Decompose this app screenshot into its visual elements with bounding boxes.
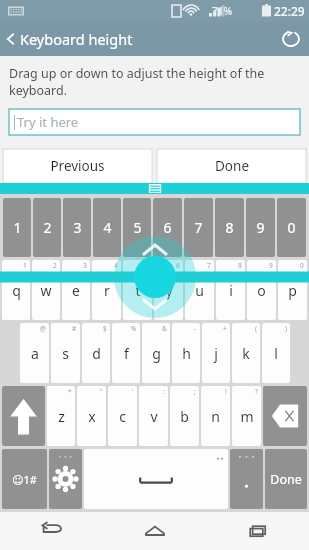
staticText: ☺1# xyxy=(12,472,37,487)
button[interactable]: 6 xyxy=(153,198,182,257)
staticText: * xyxy=(68,387,72,396)
button[interactable]: 2 xyxy=(33,198,61,257)
button[interactable]: Shift xyxy=(2,386,45,446)
button[interactable]: Period xyxy=(230,449,263,509)
staticText: a xyxy=(31,344,39,363)
staticText: 0 xyxy=(287,218,296,237)
button[interactable]: Try it here xyxy=(9,109,300,135)
button[interactable]: Previous xyxy=(3,149,152,183)
staticText: 6 xyxy=(163,218,172,237)
staticText: h xyxy=(182,344,191,363)
button[interactable]: 1 xyxy=(3,198,31,257)
button[interactable]: 9 xyxy=(246,198,275,257)
button[interactable]: Reset xyxy=(273,22,309,56)
staticText: x xyxy=(88,407,96,426)
staticText: n xyxy=(211,407,220,426)
button[interactable]: Space xyxy=(84,449,228,509)
button[interactable]: 2 xyxy=(32,260,60,320)
staticText: 8 xyxy=(238,261,242,270)
staticText: v xyxy=(150,407,158,426)
button[interactable]: 4 xyxy=(92,260,121,320)
staticText: y xyxy=(165,281,173,300)
button[interactable]: & xyxy=(142,323,170,383)
button[interactable]: 3 xyxy=(63,198,91,257)
button[interactable]: 7 xyxy=(184,198,213,257)
staticText: Done xyxy=(215,157,249,175)
button[interactable]: 8 xyxy=(215,198,244,257)
button[interactable]: Done xyxy=(157,149,306,183)
staticText: 22:29 xyxy=(274,3,305,19)
button[interactable]: 5 xyxy=(123,198,151,257)
staticText: $ xyxy=(103,324,107,333)
button[interactable]: Back xyxy=(0,512,103,550)
button[interactable]: @ xyxy=(20,323,49,383)
staticText: 7 xyxy=(194,218,203,237)
button[interactable]: 9 xyxy=(247,260,276,320)
staticText: ; xyxy=(194,387,196,396)
button[interactable]: Back xyxy=(0,25,141,53)
button[interactable]: 0 xyxy=(278,260,307,320)
button[interactable]: Drag handle xyxy=(0,183,309,194)
staticText: 71% xyxy=(212,4,232,18)
button[interactable]: 0 xyxy=(277,198,306,257)
staticText: Try it here xyxy=(17,113,79,131)
button[interactable]: ' xyxy=(108,386,137,446)
staticText: + xyxy=(223,324,227,333)
staticText: ( xyxy=(255,324,257,333)
button[interactable]: % xyxy=(112,323,140,383)
staticText: k xyxy=(242,344,250,363)
staticText: q xyxy=(12,281,21,300)
staticText: t xyxy=(135,281,141,300)
button[interactable]: 7 xyxy=(185,260,214,320)
staticText: - xyxy=(194,324,197,333)
staticText: @ xyxy=(40,324,46,333)
staticText: z xyxy=(58,407,65,426)
staticText: g xyxy=(152,344,161,363)
button[interactable]: ) xyxy=(262,323,290,383)
button[interactable]: 5 xyxy=(123,260,152,320)
button[interactable]: " xyxy=(77,386,106,446)
staticText: Drag up or down to adjust the height of … xyxy=(9,65,265,98)
button[interactable]: ! xyxy=(201,386,230,446)
button[interactable]: * xyxy=(47,386,75,446)
staticText: 5 xyxy=(133,218,142,237)
button[interactable]: $ xyxy=(82,323,110,383)
staticText: % xyxy=(131,324,137,333)
button[interactable]: : xyxy=(139,386,168,446)
staticText: " xyxy=(100,387,103,396)
button[interactable]: 1 xyxy=(2,260,30,320)
button[interactable]: + xyxy=(202,323,230,383)
staticText: ' xyxy=(132,387,134,396)
button[interactable]: 3 xyxy=(62,260,90,320)
staticText: ? xyxy=(255,387,258,396)
staticText: j xyxy=(214,344,218,363)
staticText: 9 xyxy=(269,261,273,270)
staticText: c xyxy=(119,407,126,426)
button[interactable]: - xyxy=(172,323,200,383)
staticText: 3 xyxy=(73,218,82,237)
staticText: l xyxy=(274,344,278,363)
staticText: 4 xyxy=(114,261,118,270)
button[interactable]: ☺1# xyxy=(2,449,47,509)
staticText: 2 xyxy=(53,261,57,270)
button[interactable]: 6 xyxy=(154,260,183,320)
button[interactable]: Backspace xyxy=(263,386,307,446)
staticText: 9 xyxy=(256,218,265,237)
button[interactable]: Home xyxy=(103,512,206,550)
staticText: # xyxy=(72,324,77,333)
button[interactable]: Done xyxy=(265,449,307,509)
button[interactable]: 4 xyxy=(93,198,121,257)
staticText: e xyxy=(72,281,80,300)
staticText: f xyxy=(124,344,129,363)
staticText: m xyxy=(240,407,254,426)
button[interactable]: ? xyxy=(232,386,261,446)
button[interactable]: # xyxy=(51,323,80,383)
button[interactable]: ( xyxy=(232,323,260,383)
staticText: 4 xyxy=(103,218,112,237)
button[interactable]: ; xyxy=(170,386,199,446)
button[interactable]: Settings xyxy=(49,449,82,509)
button[interactable]: Recents xyxy=(206,512,309,550)
button[interactable]: 8 xyxy=(216,260,245,320)
staticText: r xyxy=(104,281,110,300)
